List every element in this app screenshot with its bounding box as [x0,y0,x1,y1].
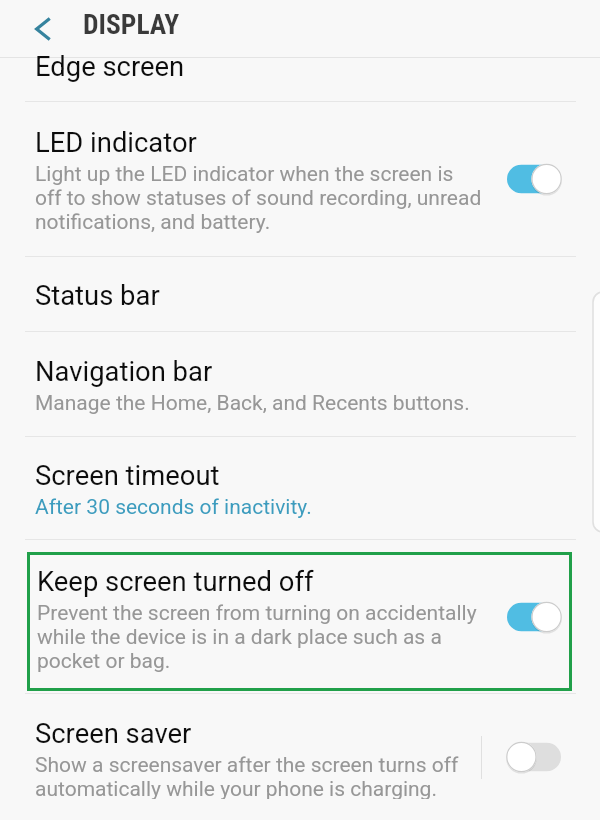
staticText: Manage the Home, Back, and Recents butto… [35,391,470,416]
staticText: LED indicator [35,127,197,159]
button[interactable]: Screen saver [0,694,600,820]
staticText: Status bar [35,280,160,312]
staticText: Show a screensaver after the screen turn… [35,753,482,799]
staticText: Edge screen [35,51,185,83]
staticText: After 30 seconds of inactivity. [35,495,312,520]
staticText: Navigation bar [35,356,213,388]
staticText: DISPLAY [83,8,180,40]
staticText: Screen saver [35,718,192,750]
button[interactable]: Navigation bar [0,332,600,436]
button[interactable]: Turn off [507,163,561,195]
button[interactable]: Status bar [0,257,600,331]
staticText: Light up the LED indicator when the scre… [35,162,482,234]
button[interactable]: Turn on [507,741,561,773]
button[interactable]: LED indicator [0,102,600,256]
staticText: Prevent the screen from turning on accid… [37,601,484,673]
staticText: Screen timeout [35,460,220,492]
button[interactable]: Keep screen turned off [0,540,600,693]
button[interactable]: Edge screen [0,58,600,101]
button[interactable]: Turn off [507,601,561,633]
button[interactable]: Navigate up [16,0,70,57]
staticText: Keep screen turned off [37,566,314,598]
button[interactable]: Screen timeout [0,437,600,539]
